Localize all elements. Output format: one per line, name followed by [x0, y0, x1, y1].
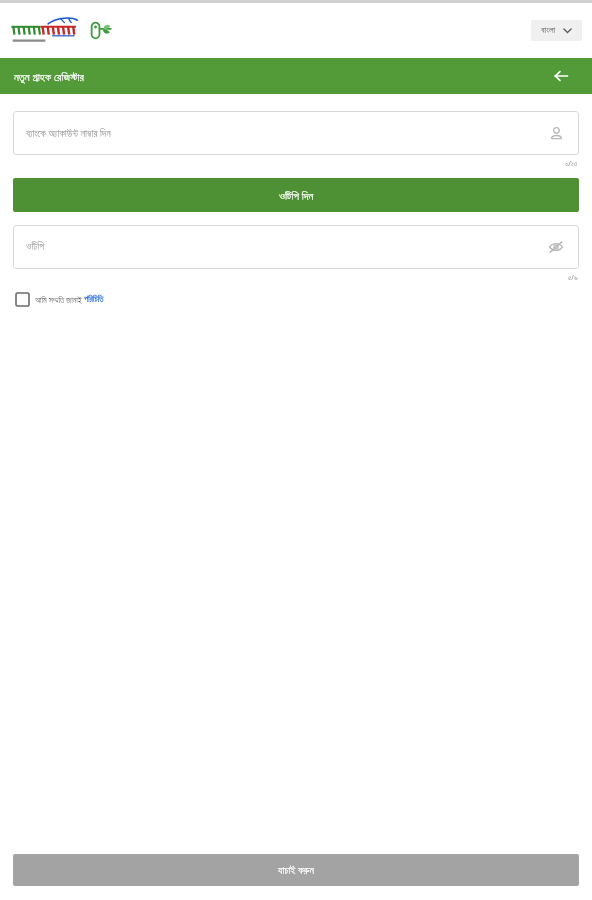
staticText: ওটিপি: [26, 242, 545, 252]
button[interactable]: পরিচিতি: [84, 296, 104, 304]
button[interactable]: Toggle OTP visibility: [545, 236, 567, 258]
button[interactable]: আমি সম্মতি জানাই: [14, 290, 106, 309]
button[interactable]: Back: [546, 61, 576, 91]
staticText: আমি সম্মতি জানাই: [35, 294, 84, 305]
button[interactable]: ওটিপি: [13, 225, 579, 269]
button[interactable]: বাংলা: [531, 20, 582, 41]
button[interactable]: Account: [545, 122, 567, 144]
staticText: নতুন গ্রাহক রেজিস্টার: [14, 69, 84, 84]
staticText: ০/১৩: [565, 159, 578, 169]
button[interactable]: যাচাই করুন: [13, 854, 579, 886]
button[interactable]: ওটিপি দিন: [13, 178, 579, 212]
staticText: ৫/৬: [568, 273, 578, 283]
staticText: ওটিপি দিন: [279, 188, 314, 203]
button[interactable]: Badge: [88, 18, 114, 44]
button[interactable]: ব্যাংকে অ্যাকাউন্ট নাম্বার দিন: [13, 111, 579, 155]
staticText: যাচাই করুন: [278, 863, 314, 877]
staticText: বাংলা: [541, 26, 556, 35]
staticText: ব্যাংকে অ্যাকাউন্ট নাম্বার দিন: [26, 126, 545, 140]
button[interactable]: Logo: [10, 16, 78, 46]
